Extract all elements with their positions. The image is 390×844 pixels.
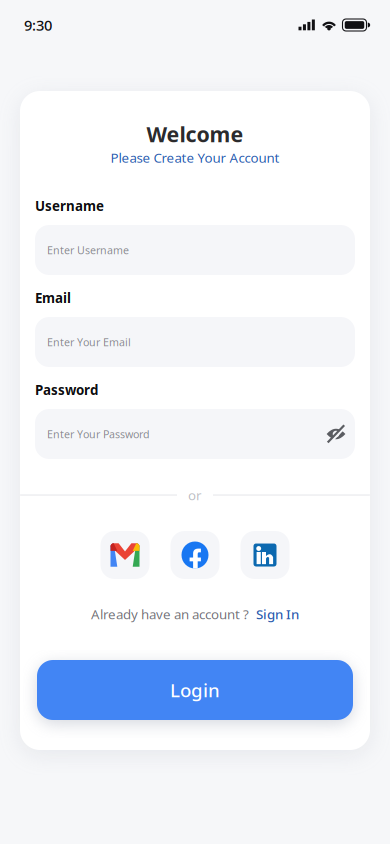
staticText: Sign In xyxy=(256,605,299,623)
staticText: Email xyxy=(35,289,71,307)
button[interactable]: Sign in with Facebook xyxy=(170,531,219,579)
staticText: Enter Your Password xyxy=(47,427,150,441)
staticText: Enter Your Email xyxy=(47,335,131,349)
button[interactable]: Enter Username xyxy=(35,225,355,275)
staticText: Enter Username xyxy=(47,243,129,257)
button[interactable]: Enter Your Password xyxy=(35,409,355,459)
button[interactable]: Enter Your Email xyxy=(35,317,355,367)
staticText: 9:30 xyxy=(24,15,52,35)
button[interactable]: Sign In xyxy=(256,605,299,623)
staticText: or xyxy=(188,486,202,504)
button[interactable]: Sign in with Google xyxy=(100,531,149,579)
staticText: Password xyxy=(35,381,98,399)
staticText: Please Create Your Account xyxy=(110,149,279,166)
button[interactable]: Login xyxy=(37,660,353,720)
staticText: Welcome xyxy=(146,120,243,148)
staticText: Username xyxy=(35,197,104,215)
staticText: Login xyxy=(170,678,220,702)
button[interactable]: Sign in with LinkedIn xyxy=(240,531,289,579)
staticText: Already have an account ? xyxy=(91,605,249,623)
